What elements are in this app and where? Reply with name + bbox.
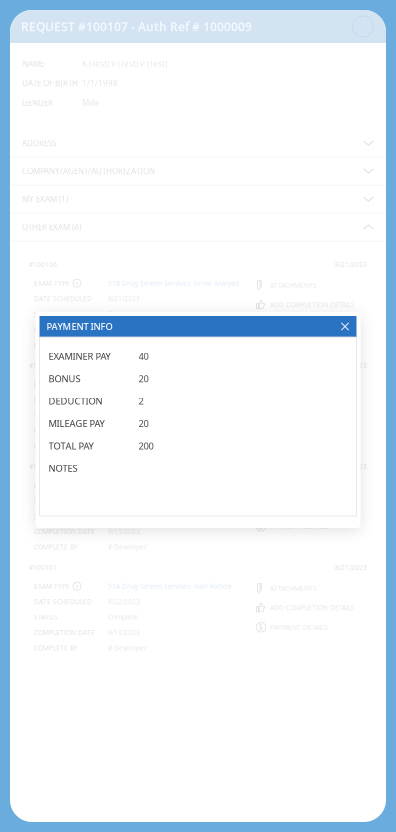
staticText: 200 — [138, 440, 153, 452]
staticText: COMPLETION DATE — [34, 628, 95, 637]
staticText: REQUEST #100107 - Auth Ref # 1000009 — [21, 18, 252, 34]
button[interactable]: $ — [256, 617, 372, 637]
staticText: Complete — [108, 613, 138, 621]
staticText: # Developer — [108, 441, 147, 450]
staticText: COMPLETE BY — [34, 542, 78, 551]
staticText: NOTES — [48, 462, 77, 474]
staticText: ATTACHMENTS — [270, 584, 317, 593]
button[interactable]: COMPANY/AGENT/AUTHORIZATION — [10, 157, 386, 185]
staticText: $ — [258, 622, 263, 632]
staticText: 51B Drug Screen Services: Urine Analysis — [108, 380, 239, 389]
staticText: 8/21/2023 — [335, 462, 367, 471]
button[interactable]: ADD COMPLETION DETAILS — [256, 598, 372, 617]
staticText: NAME — [22, 58, 44, 69]
staticText: ADD COMPLETION DETAILS — [270, 603, 355, 612]
button[interactable]: Close — [340, 322, 349, 331]
staticText: MY EXAM (1) — [22, 194, 68, 204]
staticText: #100106 — [29, 260, 57, 269]
button[interactable]: ATTACHMENTS — [256, 275, 372, 295]
button[interactable]: ATTACHMENTS — [256, 376, 372, 396]
staticText: 8/21/2023 — [108, 395, 140, 404]
staticText: EXAM TYPE — [34, 380, 70, 389]
button[interactable]: ADD COMPLETION DETAILS — [256, 396, 372, 415]
staticText: 9/18/2023 — [108, 325, 140, 334]
staticText: STATUS — [34, 310, 58, 318]
staticText: OTHER EXAM (4) — [22, 222, 81, 232]
staticText: 20 — [138, 417, 148, 430]
button[interactable]: $ — [256, 314, 372, 334]
staticText: ATTACHMENTS — [270, 281, 317, 290]
staticText: #100105 — [29, 361, 57, 370]
button[interactable]: Back — [351, 14, 375, 38]
staticText: 9/13/2023 — [108, 527, 140, 536]
staticText: #100102 — [29, 462, 57, 471]
staticText: $ — [258, 521, 263, 531]
staticText: Complete — [108, 512, 138, 520]
staticText: BONUS — [48, 372, 80, 385]
staticText: 51B Drug Screen Services: Urine Analysis — [108, 279, 239, 288]
staticText: ADDRESS — [22, 138, 56, 148]
staticText: GENDER — [22, 97, 53, 108]
staticText: #100101 — [29, 563, 57, 572]
button[interactable]: ATTACHMENTS — [256, 477, 372, 497]
staticText: # Developer — [108, 542, 147, 551]
button[interactable]: ATTACHMENTS — [256, 578, 372, 598]
staticText: COMPLETE BY — [34, 340, 78, 349]
button[interactable]: ADD COMPLETION DETAILS — [256, 295, 372, 314]
staticText: COMPLETION DATE — [34, 426, 95, 435]
staticText: 8/21/2023 — [335, 260, 367, 269]
staticText: STATUS — [34, 512, 58, 520]
staticText: TOTAL PAY — [48, 440, 93, 452]
staticText: DATE SCHEDULED — [34, 496, 92, 505]
staticText: DEDUCTION — [48, 395, 102, 407]
staticText: 51A Drug Screen Services: Hair Follicle — [108, 582, 232, 591]
staticText: K (Test) V (Test) P (Test) — [82, 58, 167, 69]
staticText: MILEAGE PAY — [48, 417, 104, 430]
staticText: DATE OF BIRTH — [22, 78, 78, 88]
staticText: # Developer — [108, 643, 147, 652]
staticText: STATUS — [34, 613, 58, 621]
staticText: 1/1/1998 — [82, 78, 118, 88]
staticText: 8/21/2023 — [335, 361, 367, 370]
staticText: 20 — [138, 372, 148, 385]
staticText: 2 — [138, 395, 143, 407]
staticText: 40 — [138, 350, 148, 362]
staticText: 8/21/2023 — [335, 563, 367, 572]
staticText: 8/21/2023 — [108, 294, 140, 303]
staticText: PAYMENT DETAILS — [270, 522, 328, 531]
button[interactable]: $ — [256, 415, 372, 435]
staticText: 9/13/2023 — [108, 628, 140, 637]
staticText: ADD COMPLETION DETAILS — [270, 300, 355, 309]
staticText: Male — [82, 97, 100, 108]
staticText: DATE SCHEDULED — [34, 395, 92, 404]
staticText: PAYMENT DETAILS — [270, 623, 328, 632]
staticText: COMPLETE BY — [34, 441, 78, 450]
button[interactable]: ADD COMPLETION DETAILS — [256, 497, 372, 516]
staticText: COMPLETION DATE — [34, 527, 95, 536]
button[interactable]: $ — [256, 516, 372, 536]
staticText: 9/18/2023 — [108, 426, 140, 435]
staticText: COMPLETION DATE — [34, 325, 95, 334]
staticText: EXAM TYPE — [34, 279, 70, 288]
staticText: 8/22/2023 — [108, 597, 140, 606]
staticText: COMPLETE BY — [34, 643, 78, 652]
staticText: EXAMINER PAY — [48, 350, 110, 362]
staticText: STATUS — [34, 411, 58, 419]
staticText: DATE SCHEDULED — [34, 294, 92, 303]
staticText: Complete — [108, 310, 138, 318]
staticText: EXAM TYPE — [34, 582, 70, 591]
